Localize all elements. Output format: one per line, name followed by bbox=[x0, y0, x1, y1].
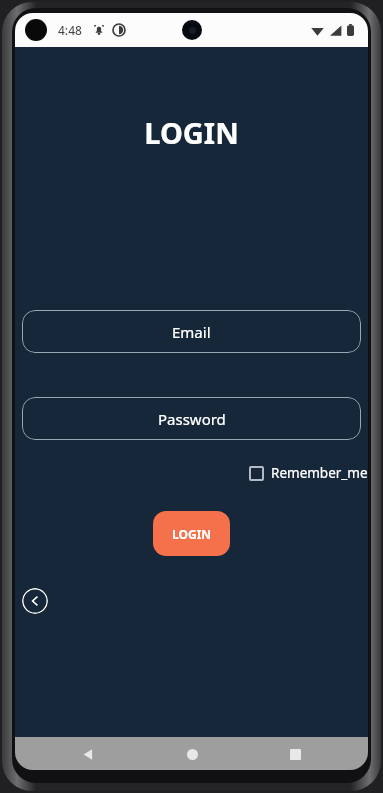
staticText: Password bbox=[158, 409, 226, 429]
staticText: 4:48 bbox=[58, 22, 82, 38]
button[interactable]: LOGIN bbox=[153, 511, 230, 556]
staticText: LOGIN bbox=[172, 526, 212, 542]
staticText: Remember_me bbox=[271, 464, 368, 482]
staticText: LOGIN bbox=[15, 113, 368, 152]
button[interactable]: Remember_me bbox=[249, 460, 368, 486]
button[interactable]: Home bbox=[179, 741, 205, 767]
button[interactable]: Password bbox=[22, 397, 361, 440]
button[interactable]: Recent apps bbox=[282, 741, 308, 767]
button[interactable]: Back bbox=[22, 588, 48, 614]
button[interactable]: Email bbox=[22, 310, 361, 353]
staticText: Email bbox=[172, 322, 211, 342]
button[interactable]: Back bbox=[75, 741, 101, 767]
